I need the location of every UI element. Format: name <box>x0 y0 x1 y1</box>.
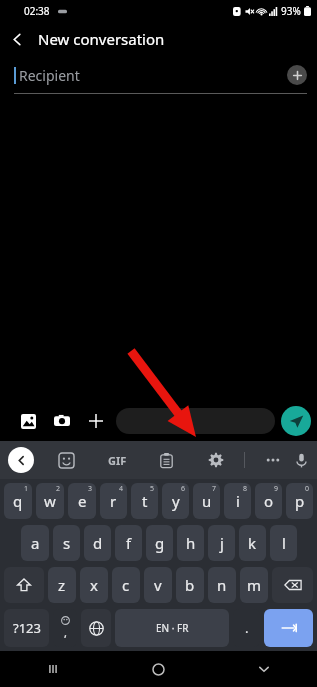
button[interactable]: v <box>144 567 172 603</box>
button[interactable]: Stickers <box>52 446 80 474</box>
staticText: EN · FR <box>156 621 189 635</box>
staticText: i <box>236 491 240 511</box>
button[interactable]: GIF <box>102 445 132 475</box>
staticText: GIF <box>108 453 127 468</box>
staticText: 7 <box>212 484 217 494</box>
button[interactable]: Send <box>281 406 311 436</box>
staticText: w <box>44 491 56 511</box>
staticText: f <box>126 533 132 553</box>
button[interactable]: g <box>146 525 173 561</box>
button[interactable]: EN · FR <box>115 609 229 647</box>
button[interactable]: q <box>4 483 32 519</box>
button[interactable]: a <box>21 525 49 561</box>
button[interactable]: s <box>53 525 80 561</box>
button[interactable]: Add recipient <box>287 65 307 85</box>
button[interactable]: More <box>259 446 287 474</box>
button[interactable]: r <box>100 483 127 519</box>
button[interactable]: Collapse toolbar <box>8 447 34 473</box>
staticText: o <box>264 491 274 511</box>
staticText: 0 <box>305 484 310 494</box>
button[interactable]: y <box>162 483 189 519</box>
staticText: , <box>64 625 67 640</box>
button[interactable]: i <box>224 483 251 519</box>
staticText: 6 <box>181 484 186 494</box>
button[interactable]: k <box>239 525 266 561</box>
staticText: h <box>186 533 196 553</box>
staticText: t <box>142 491 148 511</box>
staticText: z <box>58 575 66 595</box>
button[interactable]: w <box>36 483 64 519</box>
button[interactable] <box>116 408 275 434</box>
staticText: p <box>295 491 305 511</box>
staticText: x <box>90 575 98 595</box>
button[interactable]: ?123 <box>4 609 49 647</box>
staticText: k <box>248 533 257 553</box>
staticText: l <box>282 533 286 553</box>
staticText: 2 <box>56 484 61 494</box>
button[interactable]: Settings <box>202 446 230 474</box>
button[interactable]: Emoji and comma <box>53 609 77 647</box>
button[interactable]: h <box>177 525 204 561</box>
button[interactable]: c <box>112 567 140 603</box>
staticText: 5 <box>150 484 155 494</box>
button[interactable]: d <box>84 525 111 561</box>
staticText: d <box>93 533 103 553</box>
button[interactable]: t <box>131 483 158 519</box>
staticText: 1 <box>24 484 29 494</box>
staticText: 4 <box>119 484 124 494</box>
button[interactable]: o <box>255 483 282 519</box>
button[interactable]: z <box>48 567 76 603</box>
staticText: 8 <box>243 484 248 494</box>
button[interactable]: Change language <box>81 609 111 647</box>
button[interactable]: e <box>68 483 96 519</box>
staticText: v <box>154 575 162 595</box>
staticText: 93% <box>281 4 301 18</box>
button[interactable]: More options <box>82 407 110 435</box>
button[interactable]: Voice input <box>287 446 315 474</box>
button[interactable]: Camera <box>48 407 76 435</box>
button[interactable]: x <box>80 567 108 603</box>
staticText: g <box>155 533 165 553</box>
button[interactable]: n <box>208 567 236 603</box>
staticText: Recipient <box>19 66 80 85</box>
staticText: b <box>185 575 195 595</box>
button[interactable]: p <box>286 483 313 519</box>
button[interactable]: j <box>208 525 235 561</box>
staticText: u <box>202 491 212 511</box>
staticText: q <box>13 491 23 511</box>
staticText: ?123 <box>13 619 41 637</box>
staticText: n <box>217 575 227 595</box>
button[interactable]: Gallery <box>14 407 42 435</box>
button[interactable]: Back <box>0 22 34 56</box>
staticText: s <box>63 533 71 553</box>
button[interactable]: Enter <box>264 609 313 647</box>
button[interactable]: Recents <box>0 651 105 687</box>
button[interactable]: Backspace <box>272 567 313 603</box>
staticText: a <box>31 533 40 553</box>
staticText: . <box>245 619 249 637</box>
staticText: j <box>220 533 224 553</box>
staticText: 9 <box>274 484 279 494</box>
button[interactable]: Clipboard <box>152 446 180 474</box>
button[interactable]: b <box>176 567 204 603</box>
staticText: r <box>110 491 117 511</box>
staticText: e <box>78 491 87 511</box>
staticText: 3 <box>88 484 93 494</box>
button[interactable]: f <box>115 525 142 561</box>
staticText: y <box>172 491 180 511</box>
staticText: c <box>122 575 130 595</box>
button[interactable]: l <box>270 525 297 561</box>
button[interactable]: Home <box>105 651 211 687</box>
button[interactable]: . <box>233 609 260 647</box>
button[interactable]: Hide keyboard <box>211 651 317 687</box>
staticText: 02:38 <box>24 4 50 18</box>
button[interactable]: Shift <box>4 567 44 603</box>
button[interactable]: u <box>193 483 220 519</box>
staticText: m <box>247 575 262 595</box>
staticText: New conversation <box>38 29 165 49</box>
button[interactable]: m <box>240 567 268 603</box>
